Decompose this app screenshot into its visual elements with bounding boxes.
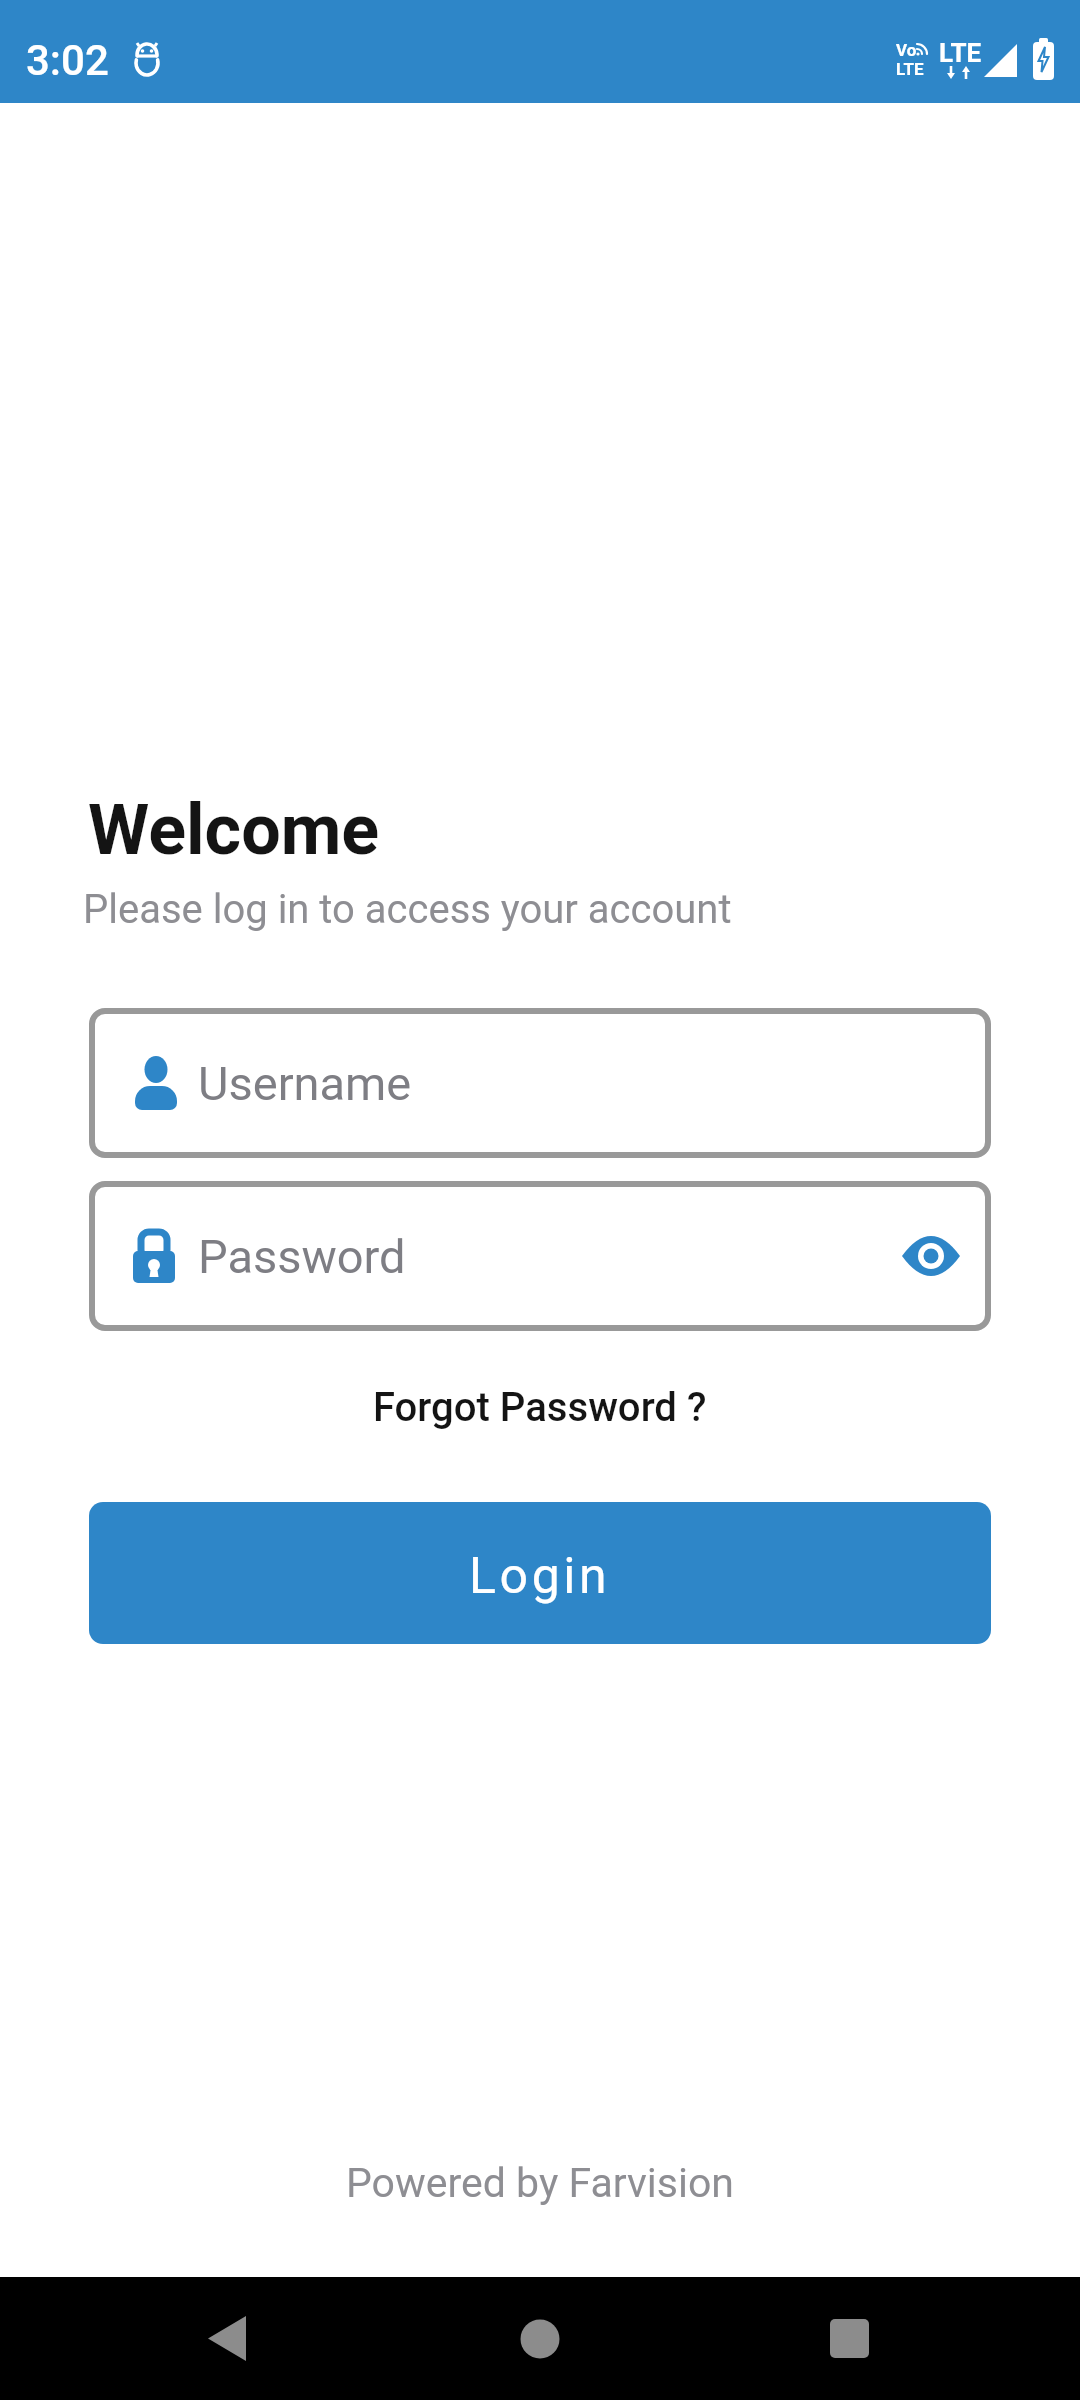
- staticText: Username: [198, 1056, 412, 1111]
- staticText: Please log in to access your account: [83, 886, 732, 933]
- button[interactable]: [720, 2277, 1080, 2400]
- button[interactable]: [0, 2277, 360, 2400]
- staticText: Password: [198, 1229, 406, 1284]
- staticText: Vo: [896, 40, 917, 60]
- button[interactable]: Forgot Password ?: [373, 1384, 707, 1431]
- button[interactable]: Password: [89, 1181, 991, 1331]
- button[interactable]: Username: [89, 1008, 991, 1158]
- button[interactable]: [902, 1236, 960, 1276]
- button[interactable]: Login: [89, 1502, 991, 1644]
- staticText: LTE: [939, 38, 982, 68]
- staticText: LTE: [896, 59, 924, 79]
- staticText: Login: [469, 1547, 611, 1606]
- staticText: Powered by Farvision: [346, 2159, 734, 2207]
- staticText: 3:02: [26, 36, 109, 85]
- staticText: Welcome: [88, 789, 380, 871]
- button[interactable]: [360, 2277, 720, 2400]
